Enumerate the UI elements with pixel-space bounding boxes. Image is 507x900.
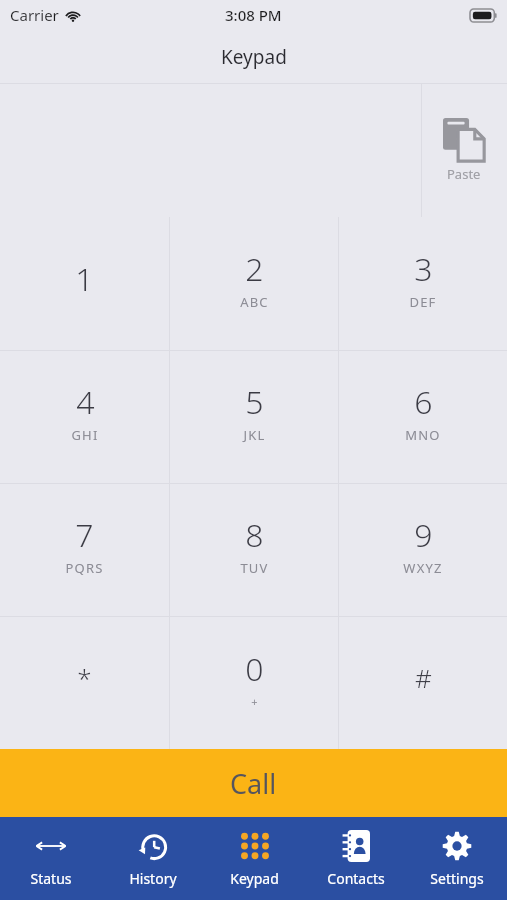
staticText: * bbox=[77, 660, 92, 695]
staticText: Call bbox=[230, 765, 277, 802]
staticText: # bbox=[415, 660, 432, 695]
button[interactable]: 3 bbox=[339, 217, 507, 350]
staticText: Keypad bbox=[230, 869, 279, 888]
staticText: GHI bbox=[71, 426, 99, 444]
button[interactable]: Status bbox=[0, 817, 102, 900]
staticText: Status bbox=[30, 869, 72, 888]
button[interactable]: 9 bbox=[339, 484, 507, 616]
staticText: 6 bbox=[414, 380, 433, 424]
staticText: 2 bbox=[245, 247, 264, 291]
button[interactable]: 7 bbox=[0, 484, 169, 616]
button[interactable]: 1 bbox=[0, 217, 169, 350]
staticText: Carrier bbox=[10, 5, 59, 25]
staticText: DEF bbox=[409, 293, 437, 311]
button[interactable]: 4 bbox=[0, 351, 169, 483]
staticText: 0 bbox=[245, 647, 264, 691]
staticText: 7 bbox=[75, 513, 94, 557]
staticText: WXYZ bbox=[403, 559, 443, 577]
staticText: Settings bbox=[430, 869, 484, 888]
button[interactable]: 8 bbox=[170, 484, 338, 616]
button[interactable]: Settings bbox=[406, 817, 507, 900]
button[interactable]: Paste bbox=[421, 84, 507, 217]
staticText: History bbox=[129, 869, 177, 888]
staticText: 3 bbox=[414, 247, 433, 291]
button[interactable]: 0 bbox=[170, 617, 338, 749]
staticText: JKL bbox=[243, 426, 266, 444]
staticText: TUV bbox=[240, 559, 269, 577]
staticText: Keypad bbox=[221, 44, 287, 70]
staticText: ABC bbox=[240, 293, 269, 311]
staticText: Paste bbox=[447, 165, 481, 183]
button[interactable]: 5 bbox=[170, 351, 338, 483]
button[interactable]: 2 bbox=[170, 217, 338, 350]
button[interactable]: * bbox=[0, 617, 169, 749]
staticText: 5 bbox=[245, 380, 264, 424]
button[interactable]: History bbox=[102, 817, 204, 900]
staticText: 3:08 PM bbox=[225, 5, 282, 25]
staticText: PQRS bbox=[65, 559, 104, 577]
button[interactable]: Keypad bbox=[204, 817, 305, 900]
button[interactable]: 6 bbox=[339, 351, 507, 483]
button[interactable]: Contacts bbox=[305, 817, 406, 900]
staticText: 4 bbox=[76, 380, 95, 424]
staticText: Contacts bbox=[327, 869, 385, 888]
button[interactable]: # bbox=[339, 617, 507, 749]
staticText: 9 bbox=[414, 513, 433, 557]
staticText: MNO bbox=[405, 426, 441, 444]
button[interactable]: Call bbox=[0, 749, 507, 817]
staticText: 1 bbox=[75, 257, 94, 301]
staticText: + bbox=[251, 694, 259, 709]
staticText: 8 bbox=[245, 513, 264, 557]
